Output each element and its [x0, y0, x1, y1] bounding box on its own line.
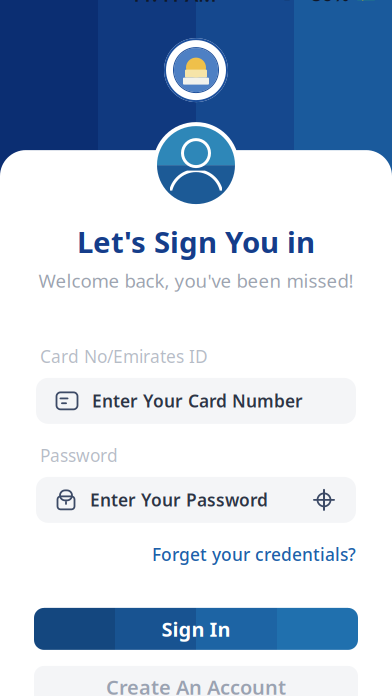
staticText: 11:41 AM [130, 0, 217, 7]
staticText: Sign In [161, 616, 230, 642]
staticText: Enter Your Card Number [92, 389, 303, 412]
button[interactable]: Enter Your Password [36, 477, 356, 523]
staticText: Create An Account [106, 674, 286, 696]
staticText: Password [40, 444, 118, 467]
staticText: Welcome back, you've been missed! [38, 268, 353, 293]
staticText: ⚡ [358, 0, 373, 1]
staticText: Card No/Emirates ID [40, 345, 208, 368]
button[interactable]: Create An Account [34, 666, 358, 696]
staticText: Let's Sign You in [77, 222, 315, 261]
staticText: Enter Your Password [90, 488, 268, 511]
button[interactable]: Sign In [34, 608, 358, 650]
button[interactable]: Forget your credentials? [152, 539, 356, 570]
staticText: 86% [311, 0, 349, 6]
staticText: Forget your credentials? [152, 543, 356, 566]
button[interactable]: Enter Your Card Number [36, 378, 356, 424]
